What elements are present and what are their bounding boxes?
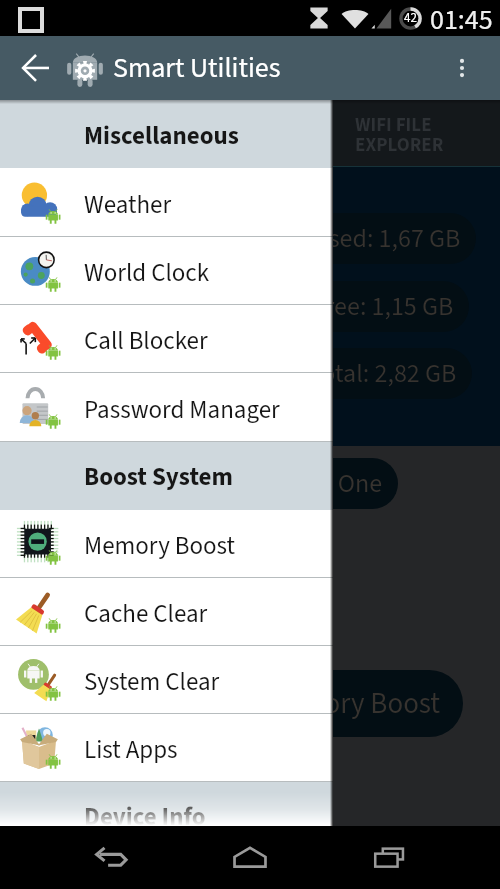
button[interactable]: Home [221,829,279,887]
staticText: Smart Utilities [113,48,281,88]
staticText: Memory Boost [84,528,236,564]
button[interactable]: Password Manager [0,373,333,441]
staticText: Memory Boost [265,683,441,724]
staticText: Boost System [84,459,233,495]
staticText: Weather [84,187,172,223]
staticText: Used: 1,67 GB [312,220,461,257]
button[interactable]: Back [11,44,59,92]
button[interactable]: List Apps [0,713,333,781]
staticText: WIFI FILE EXPLORER [355,112,444,159]
staticText: Free: 1,15 GB [313,288,454,325]
staticText: Miscellaneous [84,118,239,154]
staticText: 01:45 [430,0,493,36]
staticText: Device Info [84,799,206,835]
button[interactable]: More options [438,44,486,92]
button[interactable]: Cache Clear [0,577,333,645]
button[interactable]: System Clear [0,645,333,713]
staticText: System Clear [84,664,220,700]
staticText: List Apps [84,732,178,768]
button[interactable]: Back [82,829,140,887]
staticText: Password Manager [84,392,280,428]
staticText: 42 [404,9,417,28]
staticText: Call Blocker [84,323,208,359]
button[interactable]: World Clock [0,236,333,304]
staticText: Total: 2,82 GB [309,355,457,392]
button[interactable]: Memory Boost [0,509,333,577]
button[interactable]: Recent apps [361,829,419,887]
button[interactable]: Call Blocker [0,304,333,372]
staticText: Cache Clear [84,596,208,632]
staticText: All In One [279,465,383,502]
button[interactable]: Weather [0,168,333,236]
staticText: World Clock [84,255,210,291]
